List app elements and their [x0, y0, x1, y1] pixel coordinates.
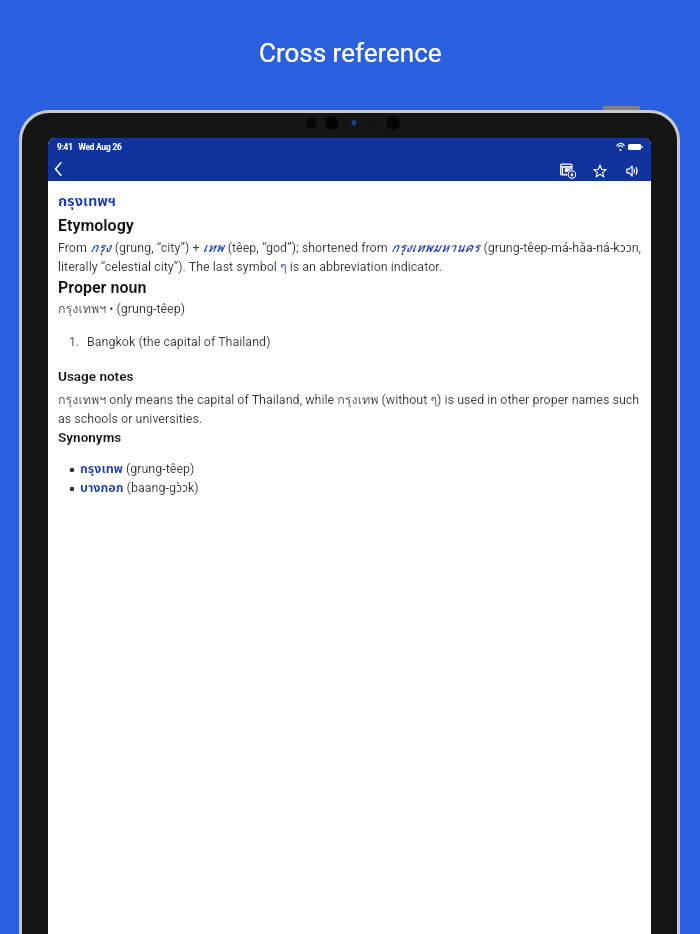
staticText: กรุงเทพฯ only means the capital of Thail…	[58, 390, 642, 426]
staticText: 1.	[69, 334, 80, 349]
staticText: Cross reference	[259, 38, 442, 68]
staticText: บางกอก (baang-gɔ̀ɔk)	[80, 479, 199, 498]
staticText: กรุงเทพฯ	[58, 191, 116, 213]
button[interactable]: Pronounce	[619, 155, 645, 181]
staticText: Synonyms	[58, 429, 122, 445]
staticText: กรุงเทพ (grung-têep)	[80, 460, 195, 479]
staticText: Usage notes	[58, 368, 134, 384]
staticText: Bangkok (the capital of Thailand)	[87, 334, 271, 349]
button[interactable]: Add to favourites	[587, 155, 613, 181]
button[interactable]: Back	[48, 157, 70, 179]
staticText: กรุงเทพฯ • (grung-têep)	[58, 299, 186, 319]
staticText: From กรุง (grung, “city”) + เทพ (têep, “…	[58, 238, 642, 277]
staticText: Proper noun	[58, 278, 147, 297]
staticText: Etymology	[58, 216, 134, 235]
staticText: 9:41 Wed Aug 26	[57, 142, 122, 152]
button[interactable]: Show cross reference	[555, 155, 581, 181]
